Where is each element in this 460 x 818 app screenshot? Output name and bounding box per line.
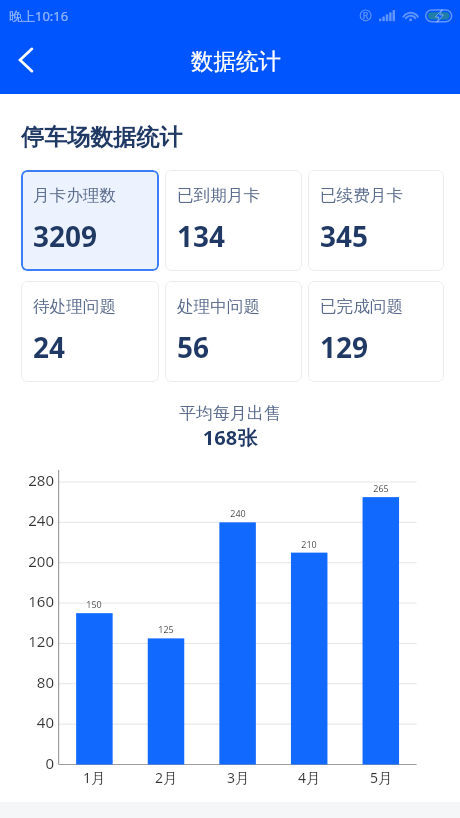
staticText: 168张: [0, 424, 460, 451]
staticText: 停车场数据统计: [21, 123, 182, 152]
staticText: 已续费月卡: [320, 185, 403, 206]
staticText: 120: [0, 631, 54, 651]
staticText: 345: [320, 217, 369, 255]
staticText: 晚上10:16: [9, 7, 69, 25]
staticText: 已到期月卡: [177, 185, 260, 206]
staticText: 数据统计: [191, 47, 281, 75]
staticText: 240: [0, 510, 54, 530]
staticText: 月卡办理数: [33, 185, 116, 206]
staticText: 待处理问题: [33, 296, 116, 317]
staticText: R: [360, 9, 371, 21]
button[interactable]: 处理中问题: [165, 281, 302, 382]
staticText: 280: [0, 470, 54, 490]
staticText: 150: [69, 598, 119, 610]
staticText: 24: [33, 328, 66, 366]
button[interactable]: 已续费月卡: [308, 170, 444, 271]
staticText: 56: [177, 328, 210, 366]
button[interactable]: 月卡办理数: [21, 170, 159, 271]
staticText: 3月: [213, 768, 263, 787]
staticText: 处理中问题: [177, 296, 260, 317]
staticText: 40: [0, 712, 54, 732]
staticText: 125: [141, 623, 191, 635]
staticText: 2月: [141, 768, 191, 787]
staticText: 134: [177, 217, 226, 255]
staticText: 160: [0, 591, 54, 611]
staticText: 265: [356, 482, 406, 494]
button[interactable]: Back: [4, 38, 48, 82]
staticText: 210: [284, 538, 334, 550]
staticText: 200: [0, 551, 54, 571]
staticText: 5月: [356, 768, 406, 787]
staticText: 3209: [33, 217, 98, 255]
staticText: 4月: [284, 768, 334, 787]
staticText: 0: [0, 753, 54, 773]
staticText: 240: [213, 507, 263, 519]
button[interactable]: 待处理问题: [21, 281, 159, 382]
staticText: 平均每月出售: [0, 403, 460, 424]
staticText: 1月: [69, 768, 119, 787]
button[interactable]: 已到期月卡: [165, 170, 302, 271]
staticText: 已完成问题: [320, 296, 403, 317]
staticText: 129: [320, 328, 369, 366]
staticText: 80: [0, 672, 54, 692]
button[interactable]: 已完成问题: [308, 281, 444, 382]
